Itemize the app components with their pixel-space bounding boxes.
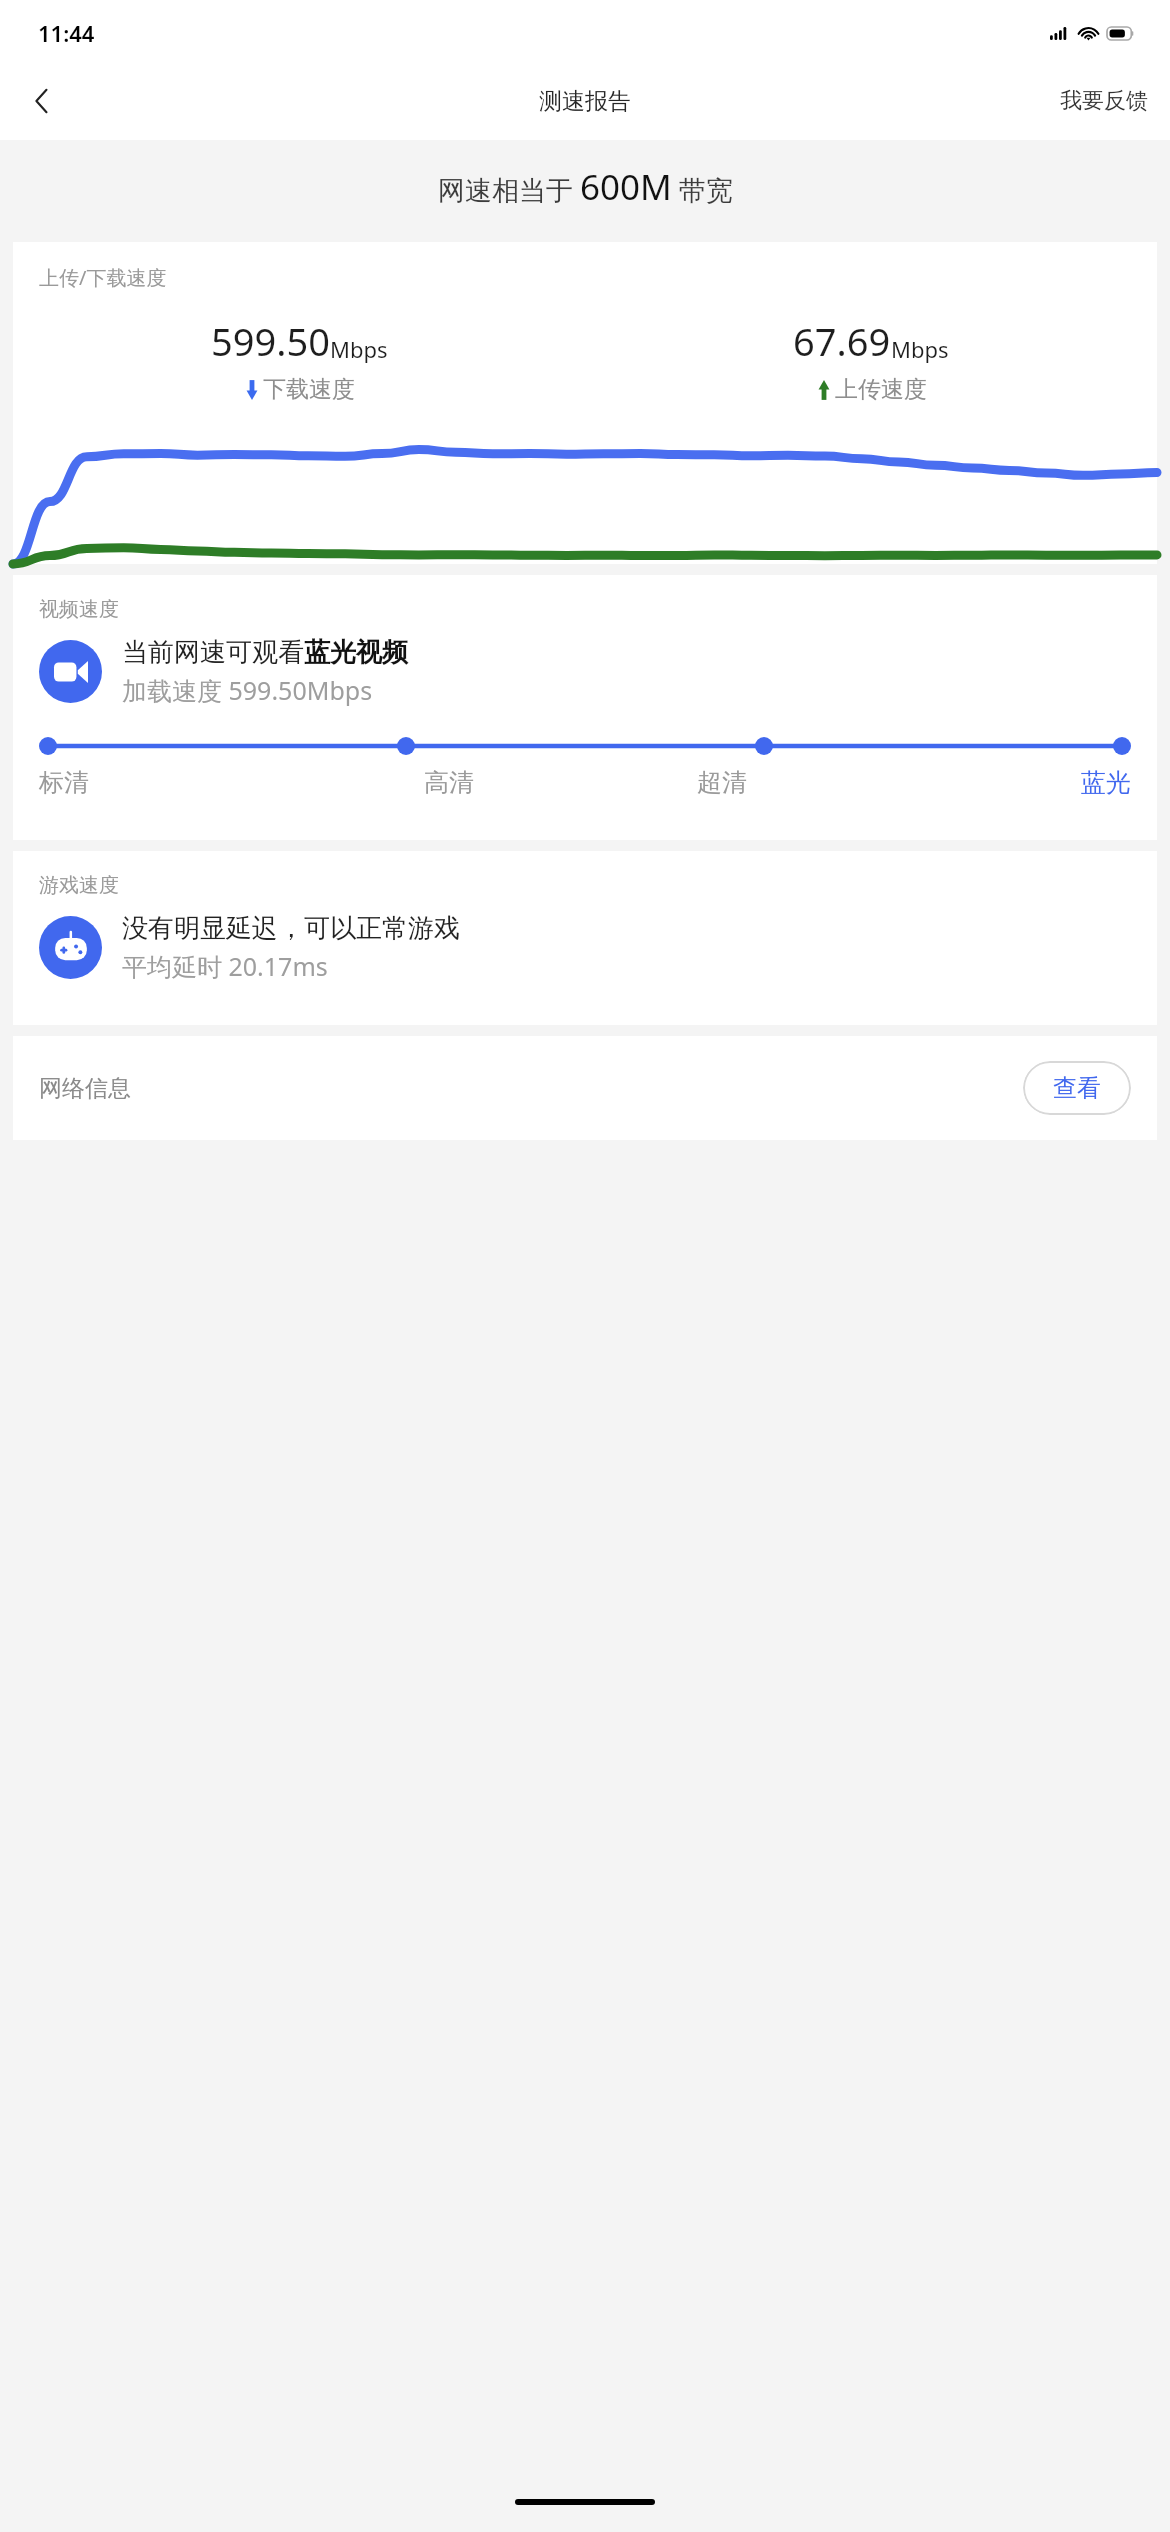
staticText: 游戏速度: [39, 873, 119, 898]
staticText: 测速报告: [539, 87, 631, 116]
staticText: 网络信息: [39, 1074, 131, 1103]
staticText: 视频速度: [39, 597, 119, 622]
staticText: 599.50: [211, 315, 330, 367]
staticText: 没有明显延迟，可以正常游戏: [122, 912, 460, 945]
staticText: Mbps: [330, 334, 388, 364]
staticText: 67.69: [793, 315, 891, 367]
button[interactable]: 我要反馈: [1038, 73, 1170, 129]
staticText: 上传速度: [835, 375, 927, 404]
button[interactable]: Back: [10, 69, 74, 133]
staticText: 高清: [424, 767, 474, 798]
staticText: 网速相当于 600M 带宽: [438, 163, 733, 211]
staticText: 当前网速可观看蓝光视频: [122, 636, 408, 669]
staticText: 蓝光: [1081, 767, 1131, 798]
staticText: 标清: [39, 767, 89, 798]
staticText: 查看: [1053, 1073, 1101, 1103]
staticText: 下载速度: [263, 375, 355, 404]
button[interactable]: 查看: [1023, 1061, 1131, 1115]
staticText: Mbps: [891, 334, 949, 364]
staticText: 平均延时 20.17ms: [122, 949, 328, 983]
button[interactable]: 视频速度: [13, 575, 1157, 840]
staticText: 加载速度 599.50Mbps: [122, 673, 373, 707]
staticText: 我要反馈: [1060, 87, 1148, 115]
staticText: 上传/下载速度: [39, 264, 167, 291]
button[interactable]: 上传/下载速度: [13, 242, 1157, 564]
button[interactable]: 游戏速度: [13, 851, 1157, 1025]
staticText: 超清: [697, 767, 747, 798]
staticText: 11:44: [38, 18, 95, 48]
